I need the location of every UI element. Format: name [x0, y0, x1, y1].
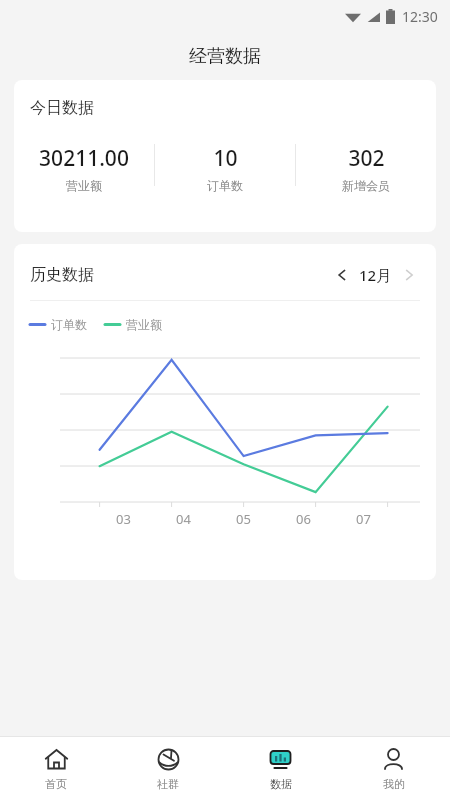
staticText: 12:30 — [402, 7, 438, 26]
button[interactable]: 数据 — [224, 739, 337, 799]
button[interactable]: 首页 — [0, 739, 112, 799]
staticText: 06 — [296, 510, 311, 528]
staticText: 900 — [413, 358, 436, 359]
staticText: 历史数据 — [30, 265, 94, 285]
staticText: 营业额 — [126, 317, 162, 332]
staticText: 500 — [413, 430, 436, 431]
staticText: 经营数据 — [189, 45, 261, 68]
button[interactable]: 我的 — [337, 739, 450, 799]
staticText: 订单数 — [51, 317, 87, 332]
button[interactable]: 12月 — [359, 265, 392, 285]
staticText: 首页 — [45, 777, 67, 791]
staticText: 我的 — [383, 777, 405, 791]
staticText: 100 — [413, 501, 436, 502]
staticText: 04 — [176, 510, 191, 528]
button[interactable]: Next month — [398, 264, 420, 286]
staticText: 302 — [348, 144, 385, 173]
staticText: 30211.00 — [39, 144, 129, 173]
button[interactable]: Previous month — [331, 264, 353, 286]
staticText: 03 — [116, 510, 131, 528]
staticText: 订单数 — [207, 178, 243, 192]
staticText: 数据 — [270, 777, 292, 791]
staticText: 今日数据 — [30, 98, 94, 118]
staticText: 营业额 — [66, 178, 102, 192]
staticText: 07 — [356, 510, 371, 528]
staticText: 新增会员 — [342, 178, 390, 192]
staticText: 社群 — [157, 777, 179, 791]
staticText: 700 — [413, 394, 436, 395]
staticText: 300 — [413, 465, 436, 466]
button[interactable]: 社群 — [112, 739, 224, 799]
staticText: 10 — [213, 144, 238, 173]
staticText: 05 — [236, 510, 251, 528]
